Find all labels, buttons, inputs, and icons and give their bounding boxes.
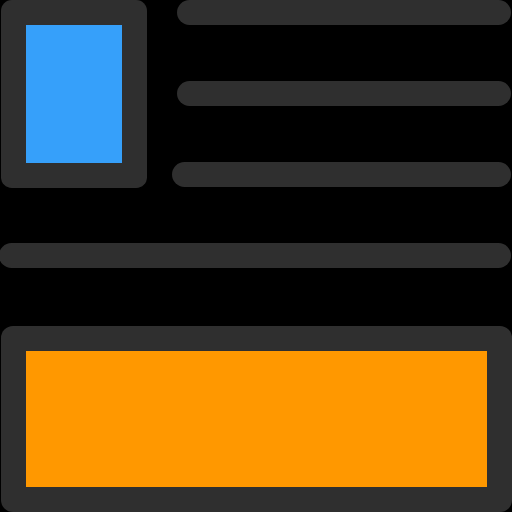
button[interactable]: Article thumbnail: [1, 0, 147, 188]
button[interactable]: Headline line 1: [177, 0, 511, 25]
button[interactable]: Headline line 2: [177, 81, 511, 106]
button[interactable]: Headline line 3: [172, 162, 511, 187]
button[interactable]: Featured image card: [1, 326, 512, 512]
button[interactable]: Section divider: [0, 243, 511, 268]
